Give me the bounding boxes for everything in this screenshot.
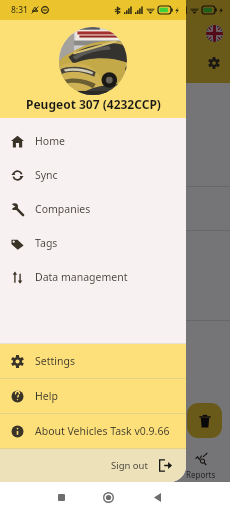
staticText: Last service [14, 197, 76, 212]
button[interactable]: Back [149, 489, 166, 506]
staticText: Peugeot 307 [14, 93, 80, 108]
staticText: Home [35, 134, 65, 148]
staticText: Data management [35, 270, 128, 284]
button[interactable]: Recents [53, 489, 70, 506]
staticText: About Vehicles Task v0.9.66 [35, 424, 170, 438]
staticText: Sync [35, 168, 58, 182]
staticText: Reports [186, 469, 216, 480]
staticText: Insurance [14, 241, 67, 256]
staticText: Help [35, 389, 58, 403]
button[interactable]: Tags [0, 226, 186, 260]
button[interactable]: Refuels [114, 448, 172, 482]
button[interactable]: Sync [0, 158, 186, 192]
button[interactable]: Next inspection [0, 321, 230, 448]
button[interactable]: Settings [0, 344, 186, 378]
staticText: Companies [35, 202, 91, 216]
button[interactable] [0, 0, 230, 482]
button[interactable]: Sign out [109, 455, 174, 476]
staticText: 8:31 [11, 4, 28, 16]
staticText: Expires 30 Sep 2025 [14, 260, 108, 274]
button[interactable]: Help [0, 379, 186, 413]
staticText: Diesel - 1.6 HDi - 2007 (18 years) [14, 112, 175, 126]
staticText: Tags [35, 236, 58, 250]
button[interactable]: Home [0, 124, 186, 158]
button[interactable]: Last service [0, 187, 230, 230]
button[interactable]: Delete [187, 403, 222, 438]
staticText: Peugeot 307 (4232CCP) [26, 96, 161, 112]
button[interactable]: Language [203, 22, 225, 44]
staticText: 8:31 [11, 4, 28, 16]
button[interactable]: Insurance [0, 231, 230, 320]
button[interactable]: Companies [0, 192, 186, 226]
staticText: Sign out [111, 459, 148, 472]
button[interactable]: About Vehicles Task v0.9.66 [0, 414, 186, 448]
staticText: 04 Nov 2025 [14, 350, 73, 364]
button[interactable]: Data management [0, 260, 186, 294]
button[interactable]: Vehicles [0, 448, 57, 482]
button[interactable]: Home [100, 489, 117, 506]
staticText: Next inspection [14, 331, 97, 346]
button[interactable]: Peugeot 307 [0, 83, 230, 186]
button[interactable]: Settings [204, 53, 224, 73]
button[interactable]: Reports [172, 448, 230, 482]
staticText: Settings [35, 354, 75, 368]
button[interactable]: Trips [57, 448, 114, 482]
